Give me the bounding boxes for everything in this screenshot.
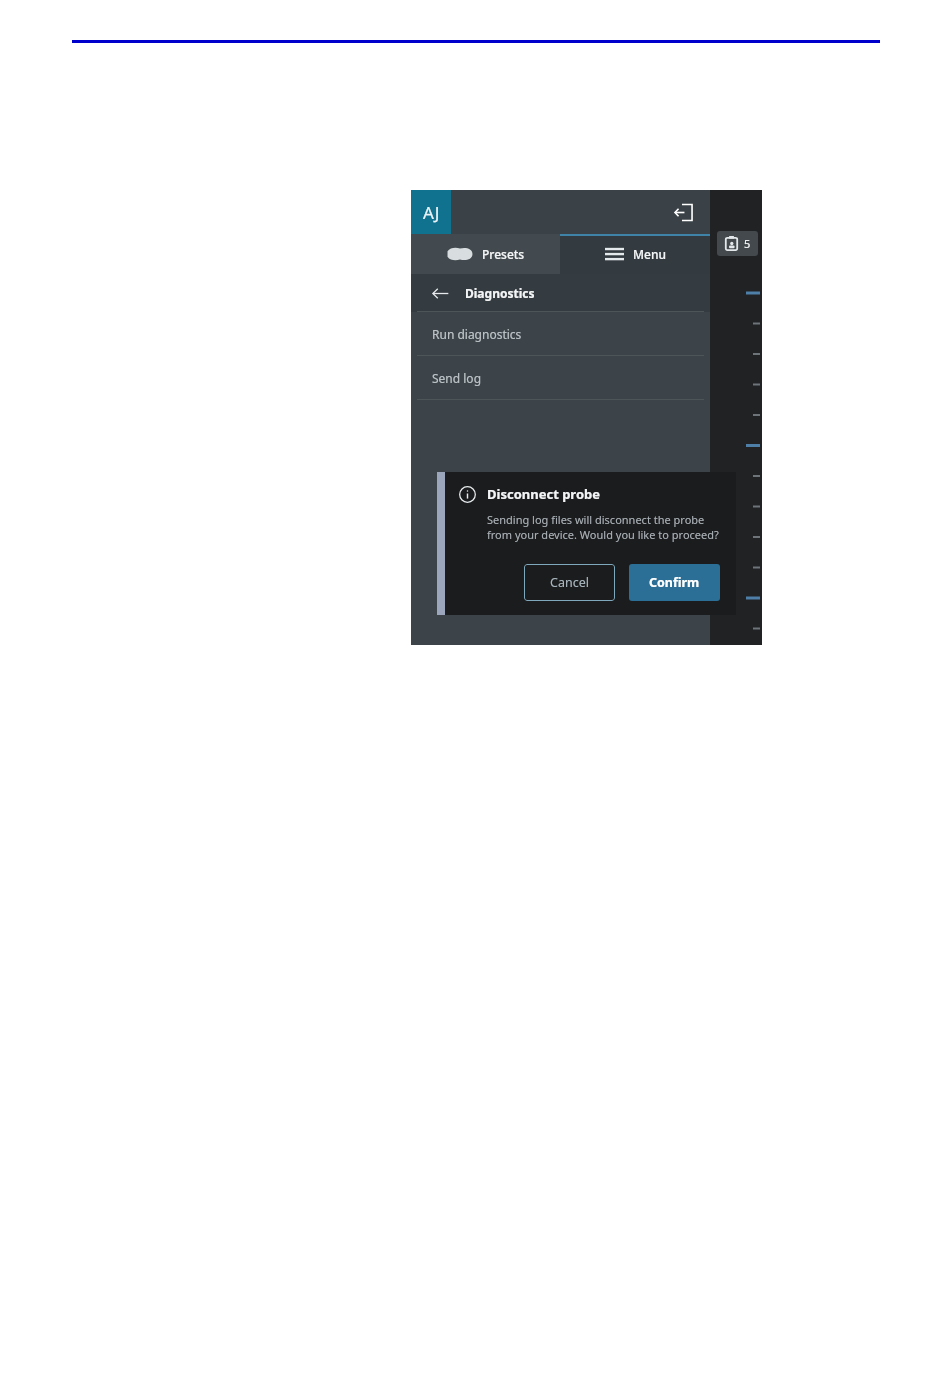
other: Patients <box>724 236 739 251</box>
button[interactable]: AJ <box>411 190 451 234</box>
staticText: Menu <box>633 246 666 262</box>
staticText: Disconnect probe <box>487 485 601 503</box>
staticText: 5 <box>744 236 751 251</box>
staticText: Diagnostics <box>465 285 535 301</box>
staticText: Cancel <box>550 574 589 591</box>
button[interactable]: Cancel <box>524 564 615 601</box>
staticText: Sending log files will disconnect the pr… <box>487 512 719 542</box>
button[interactable]: Confirm <box>629 564 720 601</box>
staticText: AJ <box>423 201 440 224</box>
staticText: Presets <box>482 246 525 262</box>
button[interactable]: Presets <box>411 234 560 274</box>
staticText: Confirm <box>649 574 700 591</box>
button[interactable]: Back <box>429 282 451 304</box>
button[interactable]: Patients <box>717 231 758 256</box>
button[interactable]: Run diagnostics <box>411 312 710 356</box>
button[interactable]: Menu <box>560 234 710 274</box>
staticText: Run diagnostics <box>432 326 522 342</box>
staticText: Send log <box>432 370 482 386</box>
button[interactable]: Log out <box>668 197 698 227</box>
button[interactable]: Send log <box>411 356 710 400</box>
